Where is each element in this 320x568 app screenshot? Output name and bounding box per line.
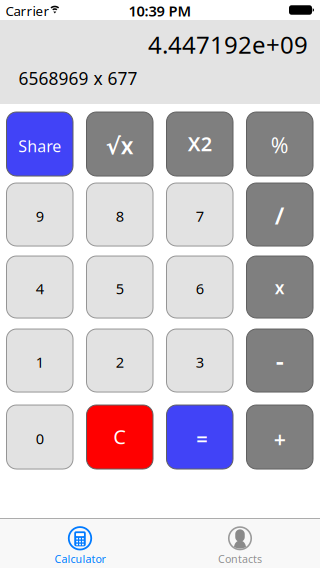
button[interactable]: 5: [86, 256, 153, 318]
staticText: X2: [188, 130, 212, 157]
staticText: √x: [106, 130, 134, 160]
button[interactable]: 1: [6, 329, 73, 392]
button[interactable]: x: [246, 256, 313, 318]
button[interactable]: C: [86, 405, 153, 469]
staticText: Contacts: [218, 552, 262, 566]
button[interactable]: 6: [166, 256, 233, 318]
staticText: =: [196, 425, 207, 452]
staticText: 3: [196, 352, 204, 372]
button[interactable]: 4: [6, 256, 73, 318]
staticText: 6: [196, 279, 204, 298]
staticText: 1: [36, 352, 44, 372]
staticText: 4: [36, 279, 44, 298]
staticText: +: [274, 425, 286, 453]
button[interactable]: Contacts: [160, 519, 320, 568]
button[interactable]: 2: [86, 329, 153, 392]
button[interactable]: -: [246, 329, 313, 392]
staticText: Calculator: [54, 552, 105, 566]
button[interactable]: 9: [6, 183, 73, 246]
button[interactable]: %: [246, 112, 313, 176]
button[interactable]: Share: [6, 112, 73, 176]
button[interactable]: +: [246, 405, 313, 469]
button[interactable]: 0: [6, 405, 73, 469]
staticText: 8: [116, 206, 124, 226]
button[interactable]: 7: [166, 183, 233, 246]
button[interactable]: /: [246, 183, 313, 246]
staticText: 6568969 x 677: [18, 67, 137, 90]
staticText: C: [113, 423, 126, 450]
staticText: Carrier: [5, 2, 49, 20]
staticText: %: [271, 131, 289, 159]
staticText: 0: [36, 429, 44, 448]
button[interactable]: 8: [86, 183, 153, 246]
button[interactable]: X2: [166, 112, 233, 176]
staticText: Share: [18, 135, 61, 157]
staticText: 7: [196, 206, 204, 226]
staticText: 2: [116, 352, 124, 372]
staticText: 4.447192e+09: [148, 29, 308, 60]
staticText: 10:39 PM: [128, 1, 191, 21]
button[interactable]: =: [166, 405, 233, 469]
staticText: -: [276, 343, 284, 377]
button[interactable]: √x: [86, 112, 153, 176]
button[interactable]: Calculator: [0, 519, 160, 568]
button[interactable]: 3: [166, 329, 233, 392]
staticText: 9: [36, 206, 44, 226]
staticText: x: [275, 276, 285, 299]
staticText: /: [275, 199, 285, 231]
staticText: 5: [116, 279, 124, 298]
